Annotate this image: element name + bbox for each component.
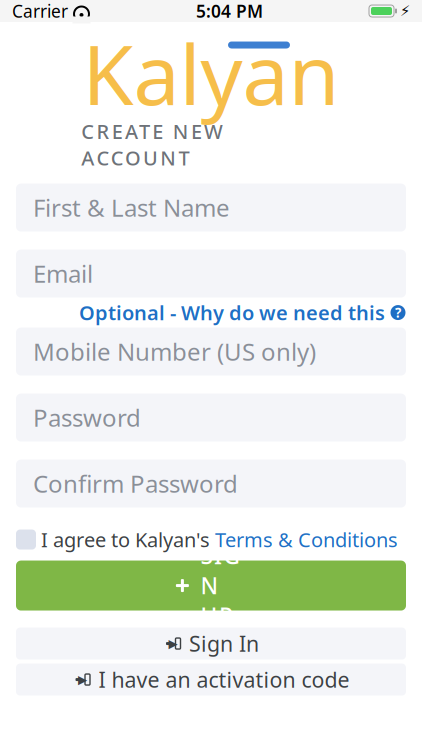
button[interactable]: Optional - Why do we need this [79, 299, 406, 326]
staticText: Email [33, 258, 93, 289]
staticText: First & Last Name [33, 192, 230, 223]
staticText: ⚡︎ [400, 3, 410, 19]
staticText: I agree to Kalyan's [36, 526, 215, 553]
staticText: ? [395, 304, 401, 321]
staticText: Carrier [12, 0, 68, 22]
staticText: SIGN UP [200, 540, 247, 631]
button[interactable]: ▶ [16, 628, 406, 660]
staticText: CREATE NEW ACCOUNT [81, 118, 341, 145]
button[interactable]: SIGN UP [16, 561, 406, 611]
staticText: ▶ [78, 673, 87, 686]
staticText: Sign In [189, 629, 259, 658]
button[interactable]: Terms & Conditions [215, 526, 398, 553]
staticText: Password [33, 402, 141, 433]
staticText: Terms & Conditions [215, 526, 398, 553]
staticText: ▶ [168, 637, 177, 650]
staticText: 5:04 PM [196, 0, 263, 22]
staticText: Optional - Why do we need this [79, 299, 385, 326]
staticText: I have an activation code [98, 665, 349, 694]
staticText: Kalyan [82, 17, 339, 129]
button[interactable]: ▶ [16, 664, 406, 696]
button[interactable]: Agree to Terms & Conditions [16, 530, 36, 550]
staticText: Confirm Password [33, 468, 238, 499]
staticText: Mobile Number (US only) [33, 336, 316, 367]
